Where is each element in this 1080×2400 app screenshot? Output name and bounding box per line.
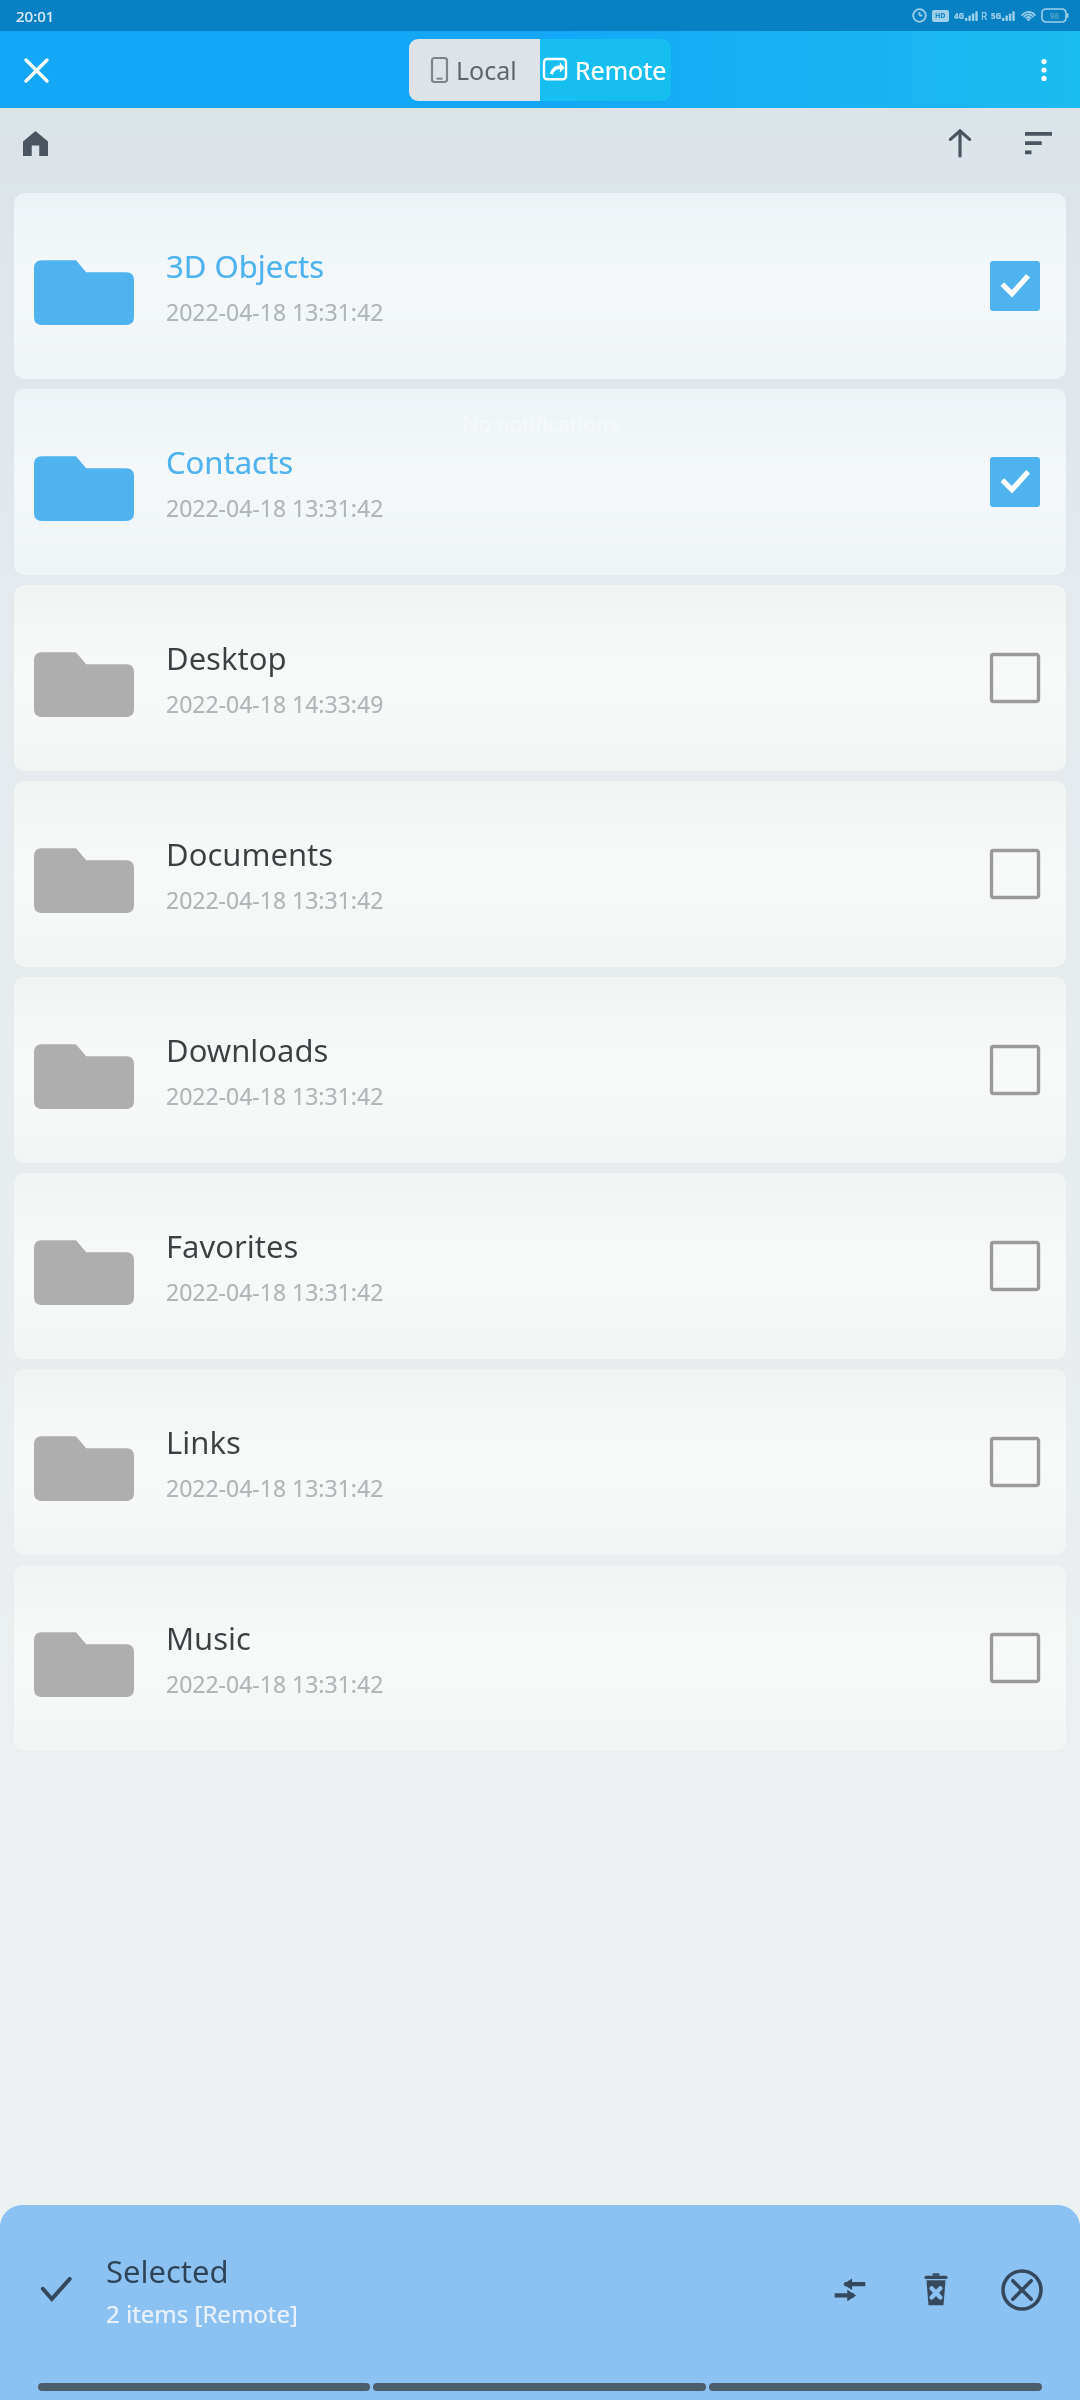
staticText: 4G bbox=[954, 10, 965, 21]
staticText: Selected bbox=[106, 2250, 229, 2292]
staticText: 2022-04-18 13:31:42 bbox=[166, 1080, 384, 1111]
button[interactable]: Remote bbox=[540, 39, 671, 101]
staticText: 2022-04-18 13:31:42 bbox=[166, 1668, 384, 1699]
staticText: 20:01 bbox=[16, 6, 55, 26]
staticText: 2022-04-18 13:31:42 bbox=[166, 492, 384, 523]
staticText: Local bbox=[456, 53, 517, 87]
staticText: Documents bbox=[166, 833, 334, 875]
staticText: Favorites bbox=[166, 1225, 299, 1267]
staticText: 5G bbox=[991, 10, 1002, 21]
button[interactable]: Documents bbox=[14, 781, 1066, 967]
staticText: Music bbox=[166, 1617, 252, 1659]
staticText: 2022-04-18 13:31:42 bbox=[166, 296, 384, 327]
button[interactable]: Cancel bbox=[988, 2256, 1056, 2324]
staticText: Remote bbox=[575, 53, 667, 87]
staticText: Contacts bbox=[166, 441, 294, 483]
button[interactable]: Not selected bbox=[984, 1039, 1046, 1101]
button[interactable]: More options bbox=[1018, 44, 1070, 96]
button[interactable]: Transfer bbox=[816, 2256, 884, 2324]
staticText: Desktop bbox=[166, 637, 287, 679]
staticText: 3D Objects bbox=[166, 245, 325, 287]
button[interactable]: Not selected bbox=[984, 1431, 1046, 1493]
button[interactable]: Navigation bbox=[709, 2383, 1042, 2391]
staticText: R bbox=[981, 9, 988, 23]
staticText: 2022-04-18 13:31:42 bbox=[166, 1472, 384, 1503]
button[interactable]: Selected bbox=[984, 255, 1046, 317]
button[interactable]: Links bbox=[14, 1369, 1066, 1555]
button[interactable]: Navigation bbox=[373, 2383, 706, 2391]
staticText: HD bbox=[935, 11, 946, 21]
button[interactable]: Not selected bbox=[984, 1627, 1046, 1689]
staticText: 2022-04-18 13:31:42 bbox=[166, 884, 384, 915]
staticText: Links bbox=[166, 1421, 241, 1463]
staticText: 2022-04-18 14:33:49 bbox=[166, 688, 384, 719]
staticText: 2 items [Remote] bbox=[106, 2297, 298, 2330]
button[interactable]: Select all bbox=[28, 2262, 84, 2318]
staticText: 98 bbox=[1050, 10, 1060, 21]
button[interactable]: Music bbox=[14, 1565, 1066, 1751]
button[interactable]: Navigation bbox=[38, 2383, 370, 2391]
button[interactable]: Home bbox=[8, 116, 62, 170]
button[interactable]: Favorites bbox=[14, 1173, 1066, 1359]
button[interactable]: Contacts bbox=[14, 389, 1066, 575]
button[interactable]: Desktop bbox=[14, 585, 1066, 771]
button[interactable]: Delete bbox=[902, 2256, 970, 2324]
button[interactable]: Not selected bbox=[984, 1235, 1046, 1297]
button[interactable]: Up bbox=[932, 115, 988, 171]
staticText: 2022-04-18 13:31:42 bbox=[166, 1276, 384, 1307]
button[interactable]: Not selected bbox=[984, 843, 1046, 905]
button[interactable]: Local bbox=[409, 39, 540, 101]
button[interactable]: 3D Objects bbox=[14, 193, 1066, 379]
staticText: Downloads bbox=[166, 1029, 329, 1071]
button[interactable]: Close bbox=[10, 44, 62, 96]
button[interactable]: Selected bbox=[984, 451, 1046, 513]
button[interactable]: Not selected bbox=[984, 647, 1046, 709]
button[interactable]: Downloads bbox=[14, 977, 1066, 1163]
button[interactable]: Sort bbox=[1010, 115, 1066, 171]
